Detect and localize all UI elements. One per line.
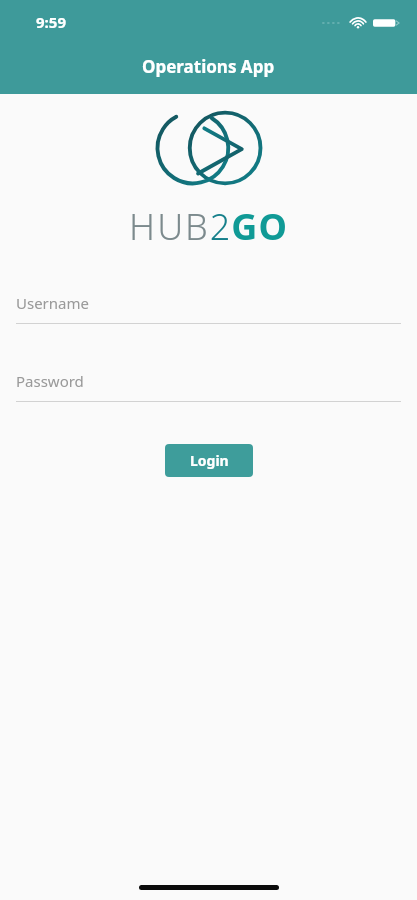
staticText: Username (16, 293, 89, 313)
staticText: Login (190, 451, 229, 470)
staticText: HUB2GO (129, 202, 288, 251)
staticText: Operations App (142, 55, 275, 78)
button[interactable]: Username (0, 293, 417, 324)
button[interactable]: Password (0, 371, 417, 402)
staticText: Password (16, 371, 84, 391)
staticText: 9:59 (36, 12, 66, 32)
button[interactable]: Login (165, 444, 253, 477)
